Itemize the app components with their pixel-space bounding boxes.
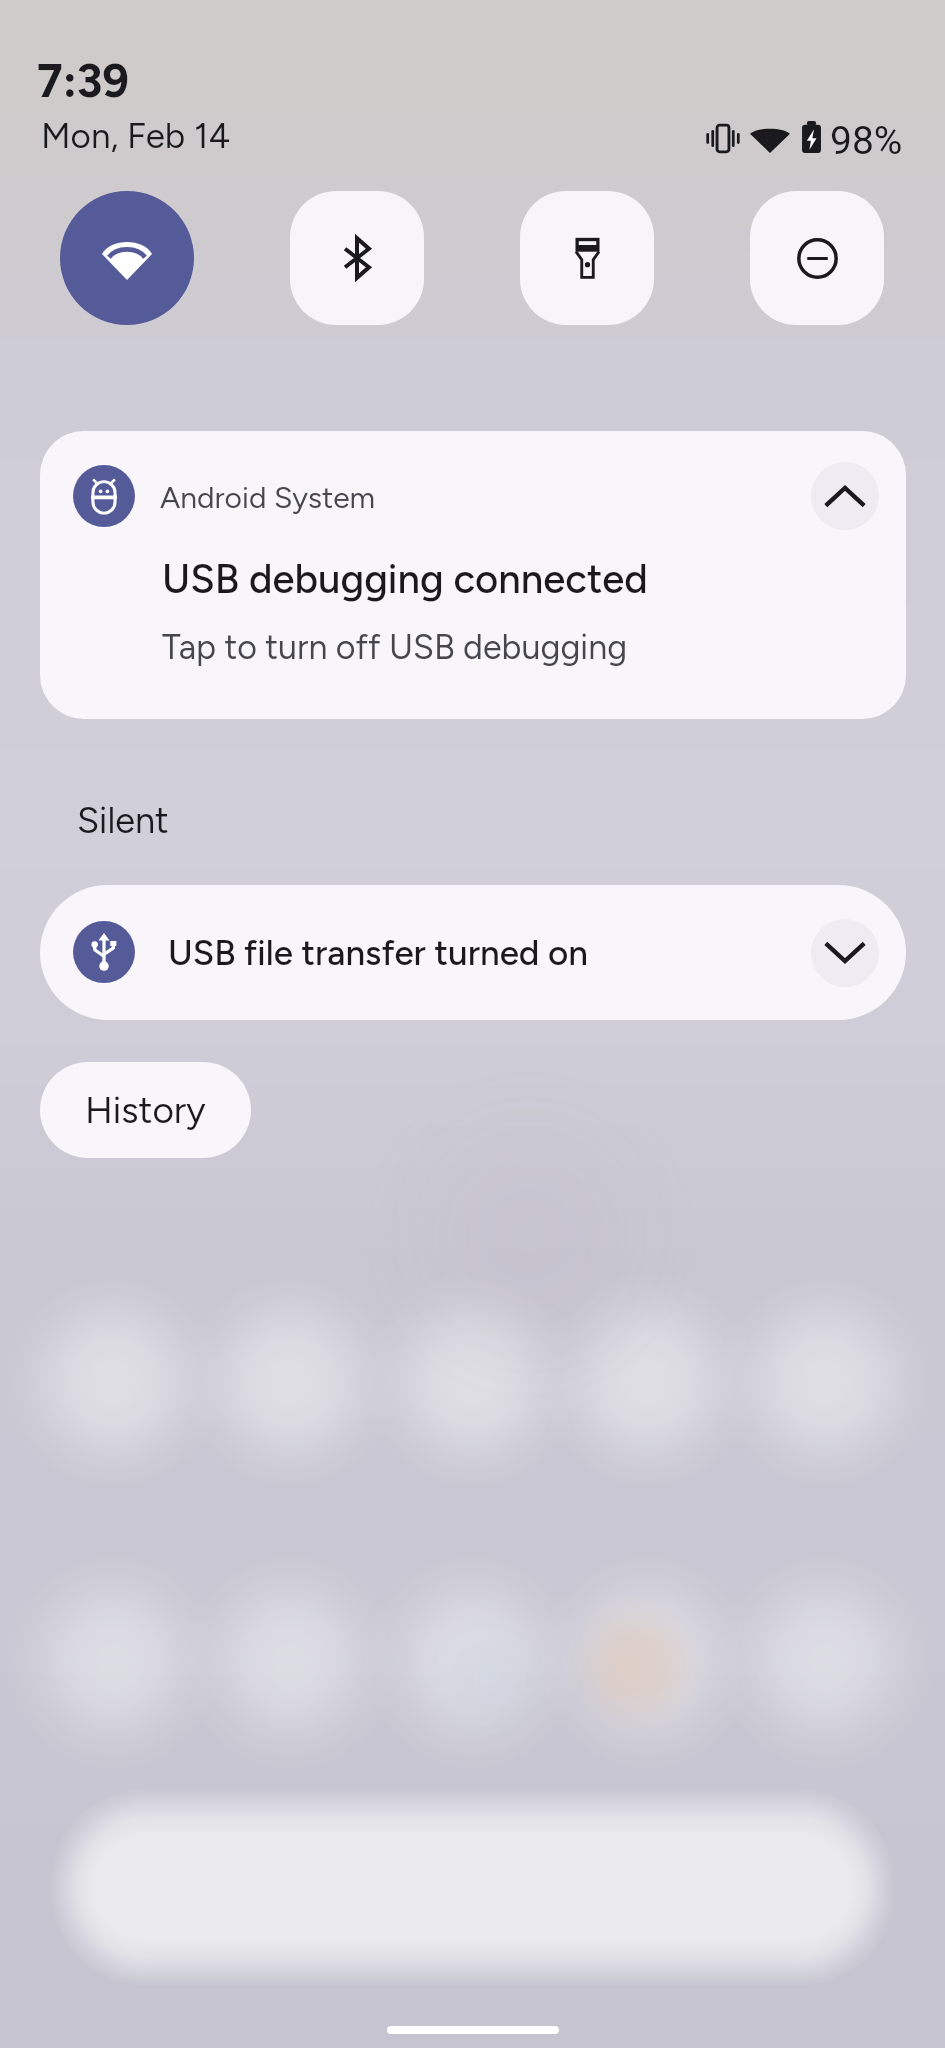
staticText: Android System [160,479,376,515]
staticText: Mon, Feb 14 [41,115,231,157]
staticText: USB file transfer turned on [168,932,588,974]
button[interactable]: Android System [40,431,906,719]
button[interactable]: Internet [60,191,194,325]
staticText: 7:39 [37,53,130,108]
staticText: 98% [830,118,903,164]
button[interactable]: Collapse notification [811,462,879,530]
button[interactable]: Do not disturb [750,191,884,325]
staticText: USB debugging connected [162,555,648,603]
button[interactable]: History [40,1062,251,1158]
button[interactable]: Bluetooth [290,191,424,325]
staticText: Silent [77,799,169,842]
staticText: History [85,1088,206,1132]
staticText: Tap to turn off USB debugging [162,627,628,668]
button[interactable]: USB file transfer turned on [40,885,906,1020]
button[interactable]: Expand notification [811,919,879,987]
button[interactable]: Flashlight [520,191,654,325]
